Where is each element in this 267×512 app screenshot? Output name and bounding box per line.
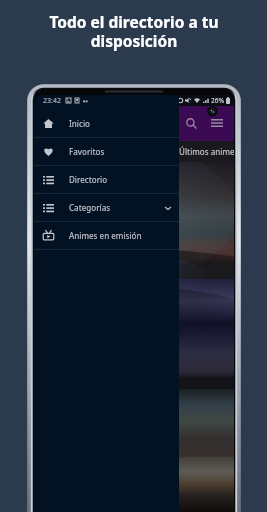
staticText: 26% (211, 96, 224, 105)
button[interactable]: Animes en emisión (34, 222, 179, 249)
staticText: Animes en emisión (69, 230, 142, 241)
button[interactable]: Favoritos (34, 138, 179, 165)
staticText: Últimos animes (179, 146, 234, 157)
button[interactable]: Inicio (34, 110, 179, 137)
button[interactable]: Categorías (34, 194, 179, 221)
button[interactable]: Directorio (34, 166, 179, 193)
button[interactable]: Menú (206, 112, 228, 134)
button[interactable]: Buscar (180, 112, 202, 134)
staticText: Favoritos (69, 146, 105, 157)
staticText: 23:42 (43, 96, 61, 106)
staticText: Todo el directorio a tu disposición (49, 11, 219, 51)
staticText: Directorio (69, 174, 108, 185)
staticText: Categorías (69, 202, 111, 213)
staticText: Inicio (69, 118, 90, 129)
